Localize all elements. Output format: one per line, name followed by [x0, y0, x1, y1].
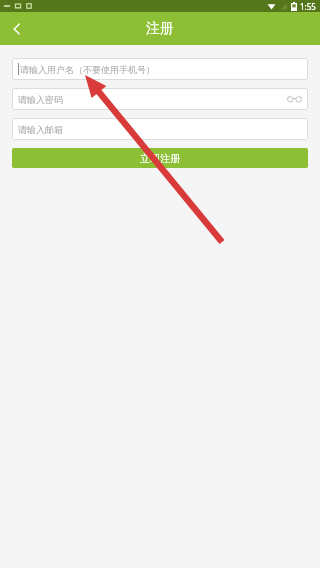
- button[interactable]: Show password: [286, 92, 302, 106]
- button[interactable]: 请输入邮箱: [12, 118, 308, 140]
- button[interactable]: Back: [0, 12, 33, 45]
- button[interactable]: 立即注册: [12, 148, 308, 168]
- staticText: 1:55: [300, 1, 316, 12]
- staticText: 请输入密码: [18, 94, 63, 105]
- staticText: 请输入用户名（不要使用手机号）: [20, 64, 155, 75]
- button[interactable]: 请输入密码: [12, 88, 308, 110]
- staticText: 立即注册: [140, 152, 180, 165]
- staticText: 注册: [146, 20, 174, 38]
- staticText: 请输入邮箱: [18, 124, 63, 135]
- button[interactable]: 请输入用户名（不要使用手机号）: [12, 58, 308, 80]
